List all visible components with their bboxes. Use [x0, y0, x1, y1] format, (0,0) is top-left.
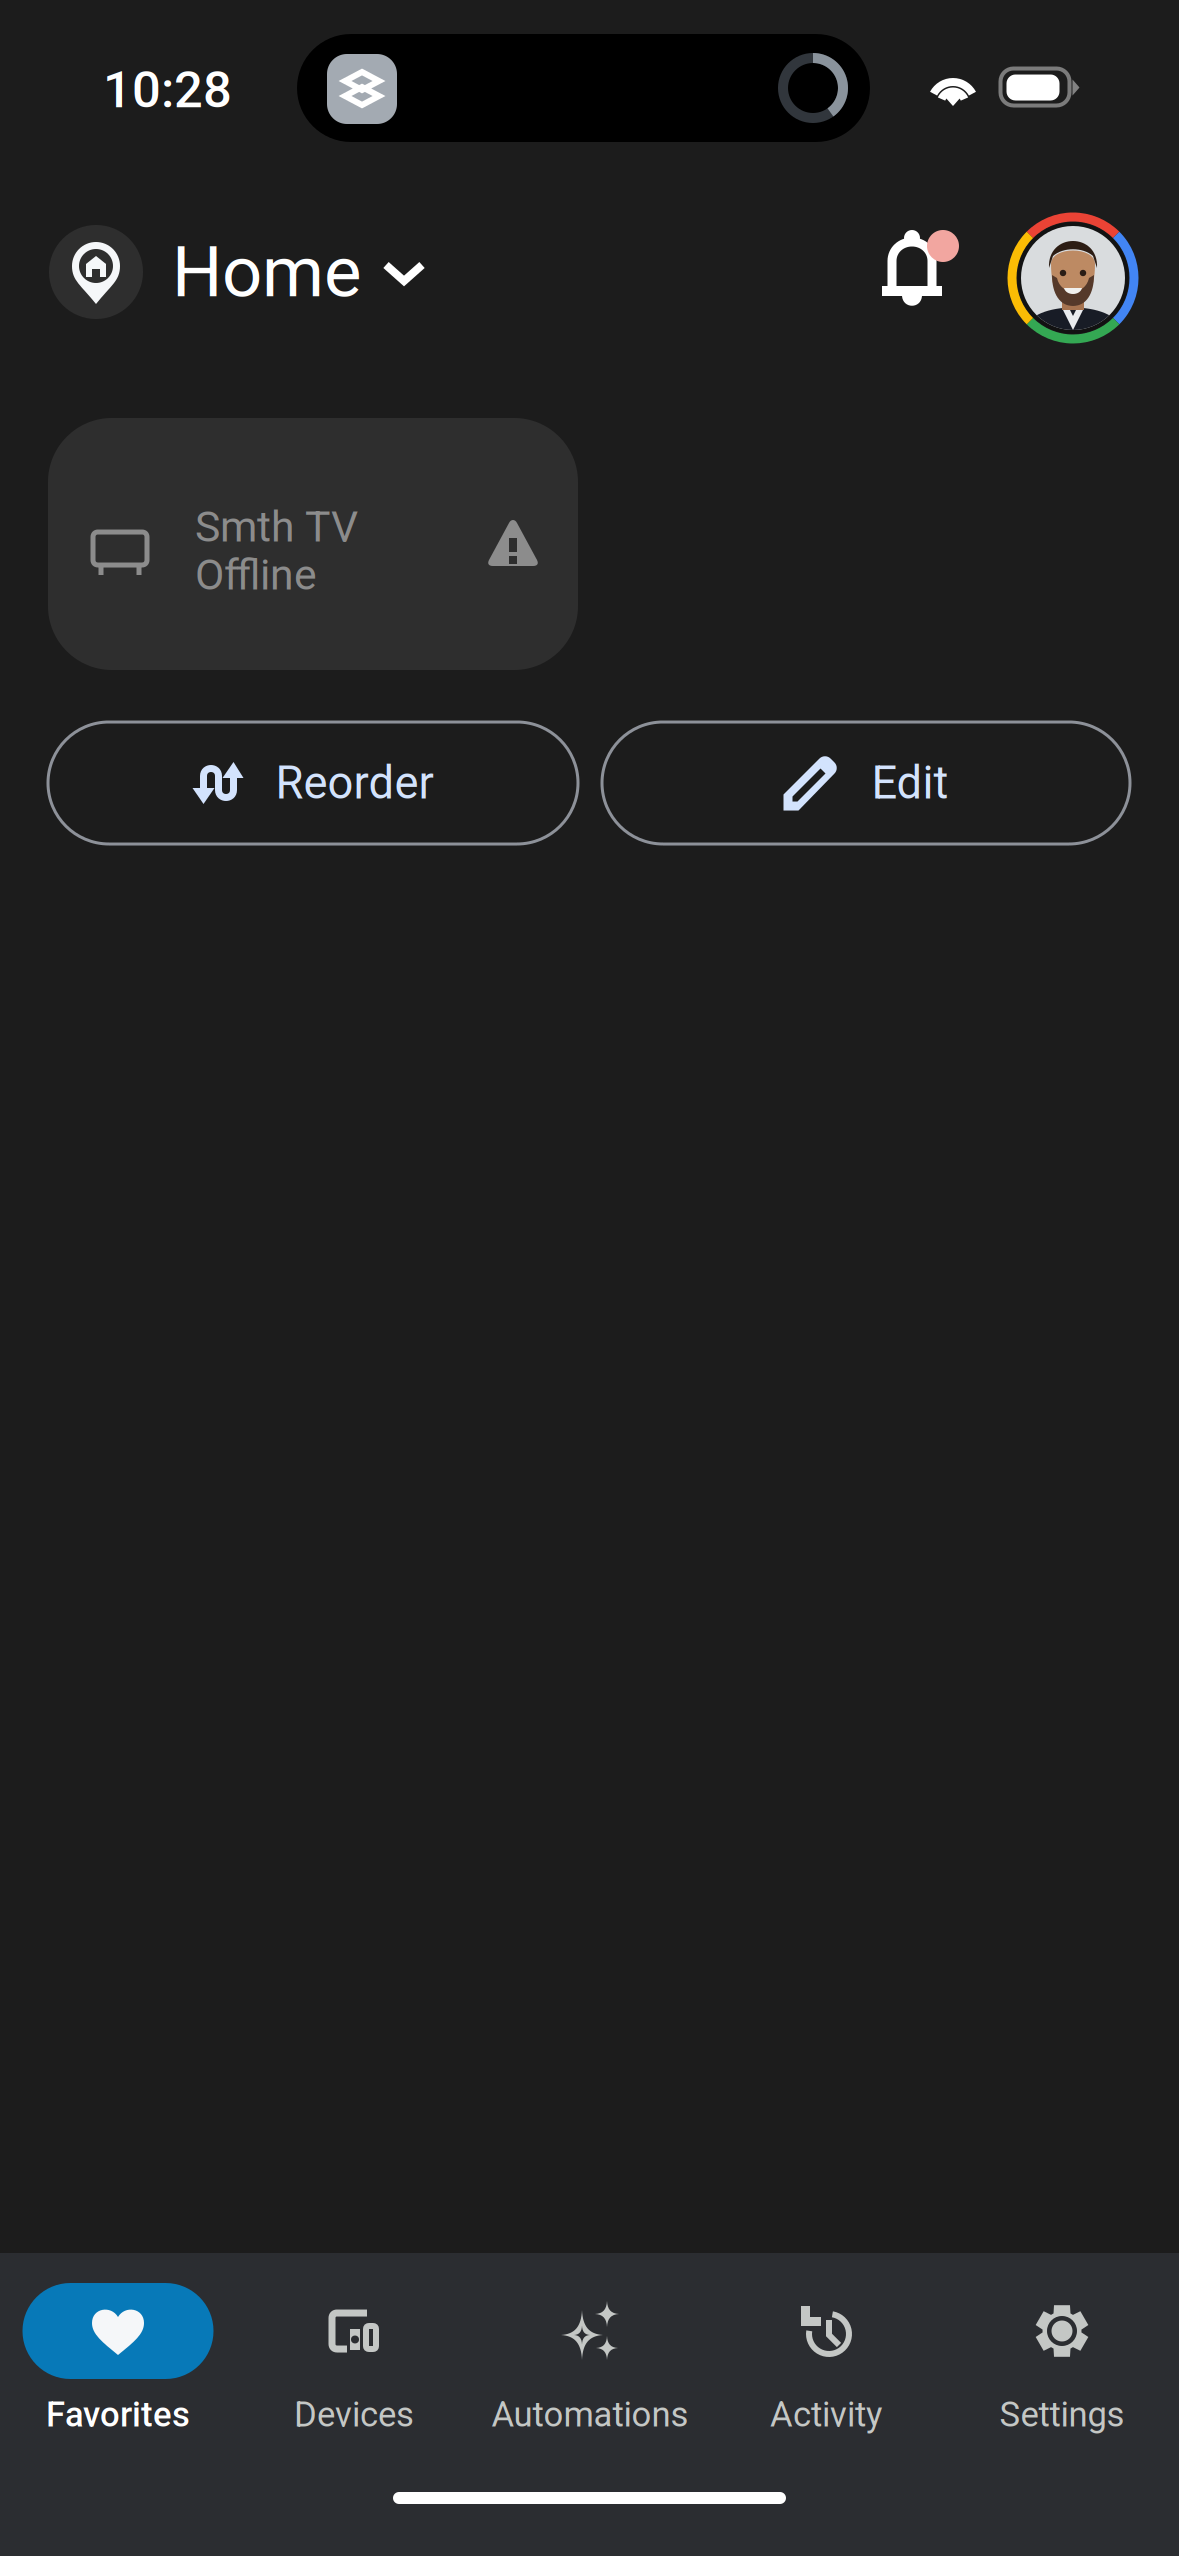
- button[interactable]: Settings: [944, 2283, 1179, 2447]
- button[interactable]: Edit: [602, 722, 1130, 844]
- staticText: Favorites: [46, 2394, 190, 2435]
- button[interactable]: Notifications: [886, 226, 966, 310]
- staticText: Automations: [491, 2394, 688, 2435]
- staticText: Devices: [294, 2394, 414, 2435]
- button[interactable]: Home: [49, 225, 429, 321]
- button[interactable]: Automations: [472, 2283, 708, 2447]
- staticText: Offline: [195, 550, 317, 600]
- staticText: Activity: [770, 2394, 882, 2435]
- button[interactable]: Account: [1007, 212, 1139, 344]
- staticText: Smth TV: [195, 502, 358, 552]
- staticText: Reorder: [275, 756, 433, 809]
- staticText: 10:28: [103, 60, 232, 120]
- button[interactable]: Reorder: [48, 722, 578, 844]
- staticText: Edit: [871, 756, 948, 809]
- button[interactable]: Favorites: [0, 2283, 236, 2447]
- button[interactable]: Smth TV: [48, 418, 578, 670]
- staticText: Settings: [999, 2394, 1124, 2435]
- button[interactable]: Activity: [708, 2283, 944, 2447]
- button[interactable]: Devices: [236, 2283, 472, 2447]
- staticText: Home: [172, 231, 361, 313]
